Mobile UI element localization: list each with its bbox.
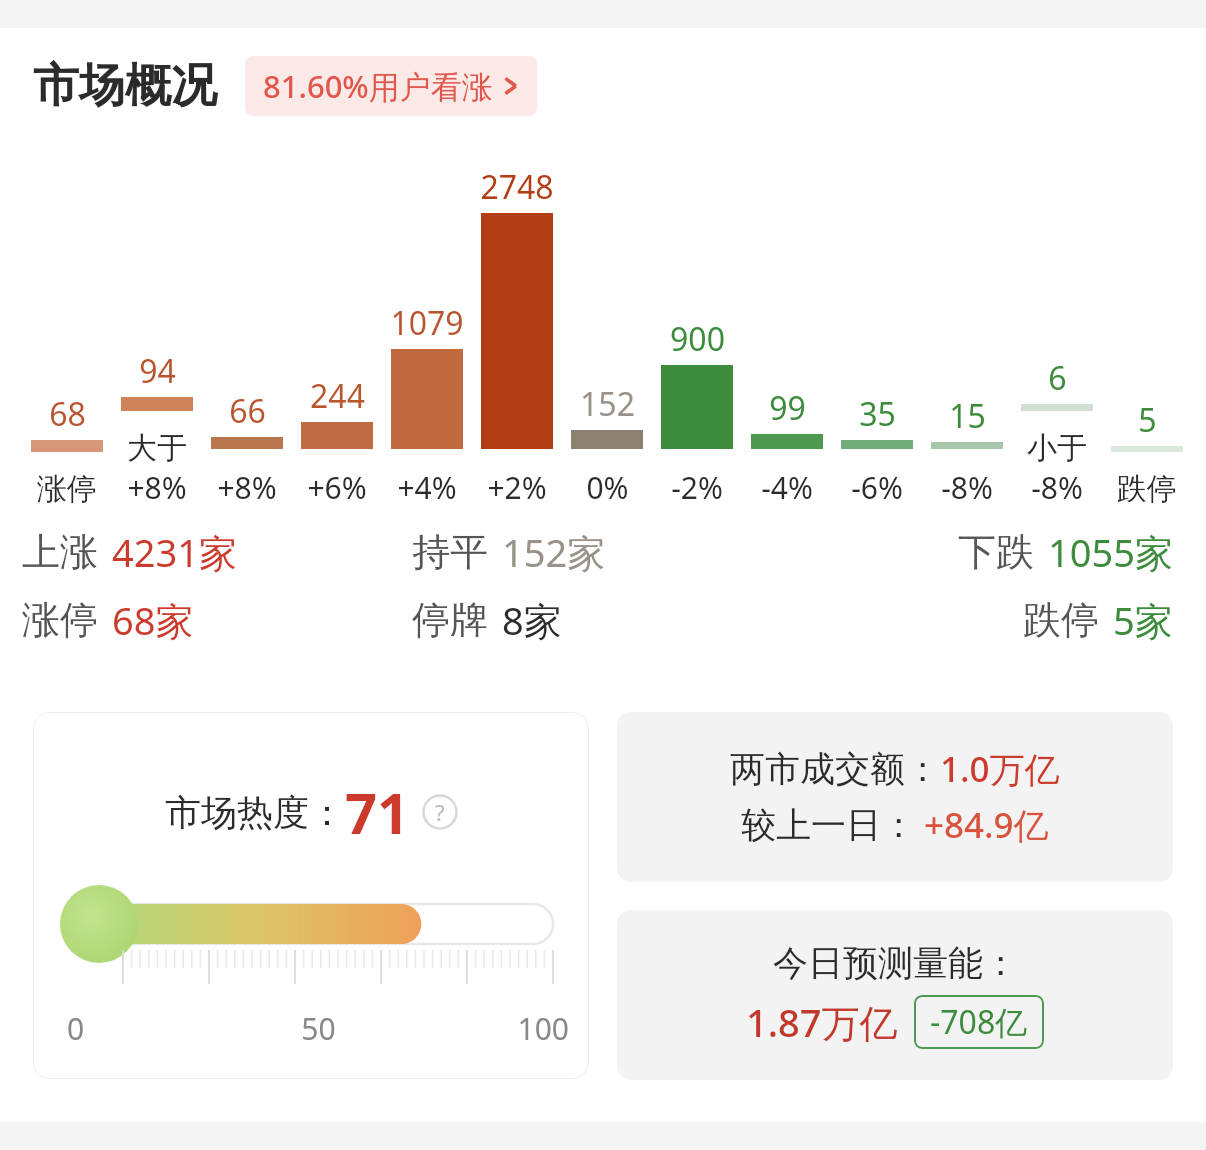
staticText: 99 xyxy=(769,386,806,430)
staticText: 5 xyxy=(1138,398,1157,442)
staticText: 今日预测量能： xyxy=(773,941,1018,985)
staticText: 94 xyxy=(139,349,176,393)
staticText: -4% xyxy=(761,467,813,508)
staticText: 15 xyxy=(949,394,986,438)
staticText: 市场概况 xyxy=(33,57,217,115)
staticText: 50 xyxy=(235,1008,402,1049)
staticText: 1055家 xyxy=(1048,526,1173,578)
staticText: 244 xyxy=(310,374,365,418)
staticText: -2% xyxy=(671,467,723,508)
staticText: 持平 xyxy=(412,528,488,576)
staticText: +8% xyxy=(217,467,277,508)
staticText: +4% xyxy=(397,467,457,508)
staticText: 100 xyxy=(402,1008,569,1049)
staticText: 5家 xyxy=(1113,594,1173,646)
staticText: 下跌 xyxy=(958,528,1034,576)
staticText: -6% xyxy=(851,467,903,508)
button[interactable]: 今日预测量能： xyxy=(617,910,1173,1080)
staticText: 1.87万亿 xyxy=(746,996,898,1048)
staticText: 上涨 xyxy=(22,528,98,576)
staticText: 68 xyxy=(49,392,86,436)
staticText: +6% xyxy=(307,467,367,508)
staticText: 81.60%用户看涨 xyxy=(263,65,493,107)
button[interactable]: 81.60%用户看涨 xyxy=(245,56,537,116)
staticText: 71 xyxy=(345,774,410,850)
staticText: 两市成交额： xyxy=(730,747,940,791)
staticText: 停牌 xyxy=(412,596,488,644)
staticText: -8% xyxy=(1031,467,1083,508)
staticText: 900 xyxy=(670,317,725,361)
staticText: 1079 xyxy=(390,301,464,345)
staticText: 1.0万亿 xyxy=(940,745,1060,793)
staticText: -8% xyxy=(941,467,993,508)
staticText: 跌停 xyxy=(1117,470,1177,508)
staticText: -708亿 xyxy=(930,1000,1028,1044)
staticText: 152 xyxy=(580,382,635,426)
staticText: 2748 xyxy=(480,165,554,209)
staticText: 0% xyxy=(586,467,629,508)
staticText: 6 xyxy=(1048,356,1067,400)
staticText: 4231家 xyxy=(112,526,237,578)
staticText: 市场热度： xyxy=(165,790,345,835)
staticText: 66 xyxy=(229,389,266,433)
button[interactable]: 两市成交额： xyxy=(617,712,1173,882)
staticText: 较上一日： xyxy=(741,803,916,847)
staticText: +84.9亿 xyxy=(924,801,1049,849)
staticText: 涨停 xyxy=(22,596,98,644)
staticText: 152家 xyxy=(502,526,606,578)
staticText: 跌停 xyxy=(1023,596,1099,644)
button[interactable]: 帮助说明 xyxy=(422,794,458,830)
staticText: ? xyxy=(435,797,445,827)
staticText: 8家 xyxy=(502,594,562,646)
staticText: 涨停 xyxy=(37,470,97,508)
staticText: 68家 xyxy=(112,594,194,646)
staticText: 35 xyxy=(859,392,896,436)
staticText: +2% xyxy=(487,467,547,508)
staticText: 小于 xyxy=(1027,429,1087,467)
button[interactable]: 市场热度： xyxy=(33,712,589,1079)
staticText: 0 xyxy=(67,1008,235,1049)
staticText: 大于 xyxy=(127,429,187,467)
staticText: +8% xyxy=(127,467,187,508)
